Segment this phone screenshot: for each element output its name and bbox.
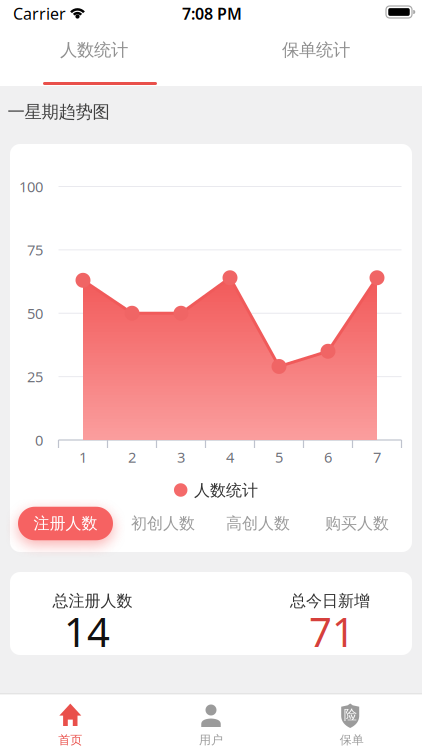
staticText: 71 xyxy=(309,605,355,658)
button[interactable]: 用户 xyxy=(141,694,281,749)
staticText: 用户 xyxy=(199,733,223,747)
staticText: 险 xyxy=(344,707,357,723)
staticText: 25 xyxy=(27,367,43,386)
staticText: 100 xyxy=(19,177,43,196)
staticText: Carrier xyxy=(13,3,66,24)
staticText: 50 xyxy=(27,303,43,323)
staticText: 人数统计 xyxy=(60,39,128,61)
staticText: 2 xyxy=(128,447,136,467)
staticText: 总今日新增 xyxy=(290,591,370,611)
staticText: 3 xyxy=(177,447,185,467)
button[interactable]: 初创人数 xyxy=(118,507,208,540)
button[interactable]: 高创人数 xyxy=(213,507,303,540)
staticText: 保单 xyxy=(340,733,364,747)
button[interactable]: 注册人数 xyxy=(18,507,113,540)
staticText: 保单统计 xyxy=(282,39,350,61)
staticText: 注册人数 xyxy=(33,514,97,533)
staticText: 7:08 PM xyxy=(182,3,242,24)
staticText: 1 xyxy=(79,447,87,467)
button[interactable]: 保单统计 xyxy=(216,25,416,75)
staticText: 初创人数 xyxy=(131,514,195,533)
staticText: 4 xyxy=(226,447,234,467)
staticText: 人数统计 xyxy=(194,481,258,500)
button[interactable]: 购买人数 xyxy=(312,507,402,540)
staticText: 一星期趋势图 xyxy=(7,101,109,123)
button[interactable]: 首页 xyxy=(0,694,140,749)
staticText: 首页 xyxy=(58,733,82,747)
staticText: 高创人数 xyxy=(226,514,290,533)
staticText: 总注册人数 xyxy=(52,591,132,611)
staticText: 6 xyxy=(324,447,332,467)
button[interactable]: 险 xyxy=(282,694,422,749)
staticText: 14 xyxy=(64,605,110,658)
staticText: 75 xyxy=(27,240,43,260)
staticText: 7 xyxy=(373,447,381,467)
staticText: 购买人数 xyxy=(325,514,389,533)
staticText: 0 xyxy=(35,430,43,450)
staticText: 5 xyxy=(275,447,283,467)
button[interactable]: 人数统计 xyxy=(0,25,194,75)
